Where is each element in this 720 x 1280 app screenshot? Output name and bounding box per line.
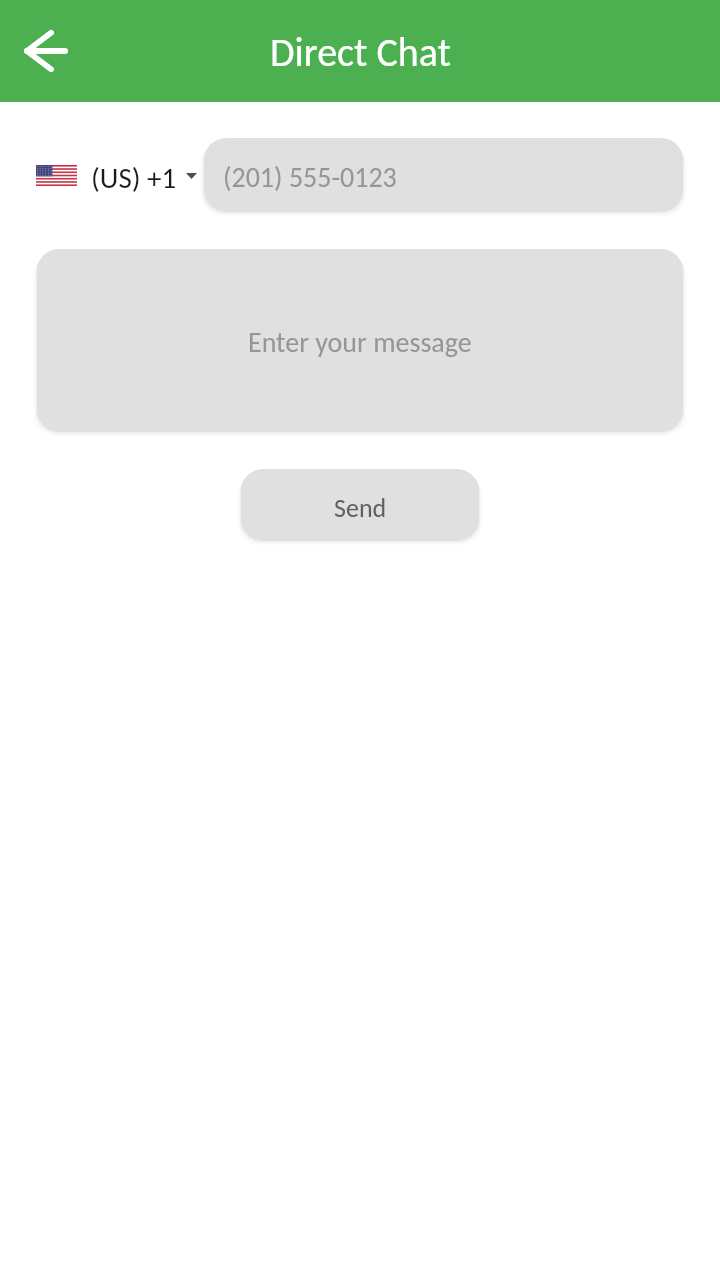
button[interactable]: Enter your message — [37, 249, 683, 432]
button[interactable]: Back — [11, 16, 81, 86]
button[interactable]: Send — [241, 469, 479, 541]
staticText: Direct Chat — [270, 28, 451, 77]
button[interactable]: Select country code — [36, 158, 197, 193]
staticText: Send — [334, 492, 387, 524]
button[interactable]: (201) 555-0123 — [204, 138, 683, 212]
staticText: (US) +1 — [91, 160, 177, 195]
staticText: (201) 555-0123 — [223, 160, 397, 194]
staticText: Enter your message — [248, 325, 472, 359]
